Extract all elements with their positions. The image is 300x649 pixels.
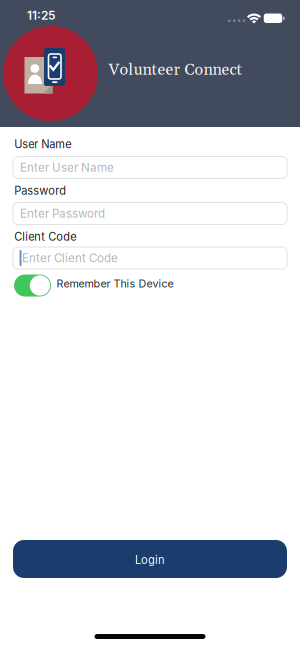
toggle[interactable]: Remember This Device — [14, 274, 51, 296]
button[interactable]: Remember This Device — [14, 274, 51, 296]
staticText: Enter Password — [20, 206, 105, 220]
staticText: Volunteer Connect — [108, 60, 242, 80]
staticText: Login — [135, 553, 165, 567]
staticText: Enter User Name — [20, 160, 114, 174]
staticText: Remember This Device — [56, 277, 173, 290]
staticText: Client Code — [14, 230, 76, 243]
button[interactable]: Login — [13, 540, 287, 578]
secureTextField[interactable]: Enter Password — [13, 202, 287, 224]
staticText: 11:25 — [27, 8, 55, 23]
staticText: Password — [14, 184, 66, 197]
staticText: Enter Client Code — [22, 251, 118, 265]
staticText: User Name — [14, 137, 71, 151]
textField[interactable]: Enter Client Code — [13, 247, 287, 269]
textField[interactable]: Enter User Name — [13, 156, 287, 178]
